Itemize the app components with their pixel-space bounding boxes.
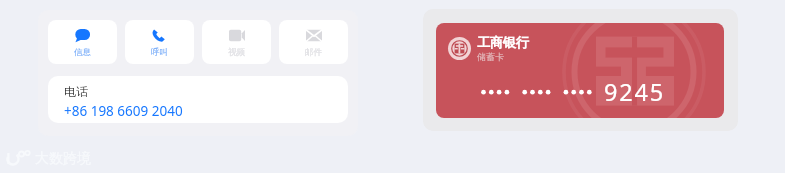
button[interactable]: Mail bbox=[279, 20, 348, 64]
button[interactable]: Video bbox=[202, 20, 271, 64]
staticText: 大数跨境 bbox=[35, 150, 91, 168]
staticText: 视频 bbox=[228, 47, 245, 58]
staticText: 工商银行 bbox=[477, 34, 529, 50]
button[interactable]: Message bbox=[48, 20, 117, 64]
staticText: 电话 bbox=[64, 84, 88, 99]
staticText: 信息 bbox=[74, 47, 91, 58]
staticText: 9245 bbox=[604, 76, 665, 108]
button[interactable]: 工商银行 bbox=[436, 23, 724, 118]
staticText: +86 198 6609 2040 bbox=[64, 102, 183, 120]
staticText: 呼叫 bbox=[151, 47, 168, 58]
staticText: 储蓄卡 bbox=[477, 51, 504, 62]
staticText: 邮件 bbox=[305, 47, 322, 58]
button[interactable]: Call bbox=[125, 20, 194, 64]
button[interactable]: 电话 bbox=[48, 76, 348, 123]
